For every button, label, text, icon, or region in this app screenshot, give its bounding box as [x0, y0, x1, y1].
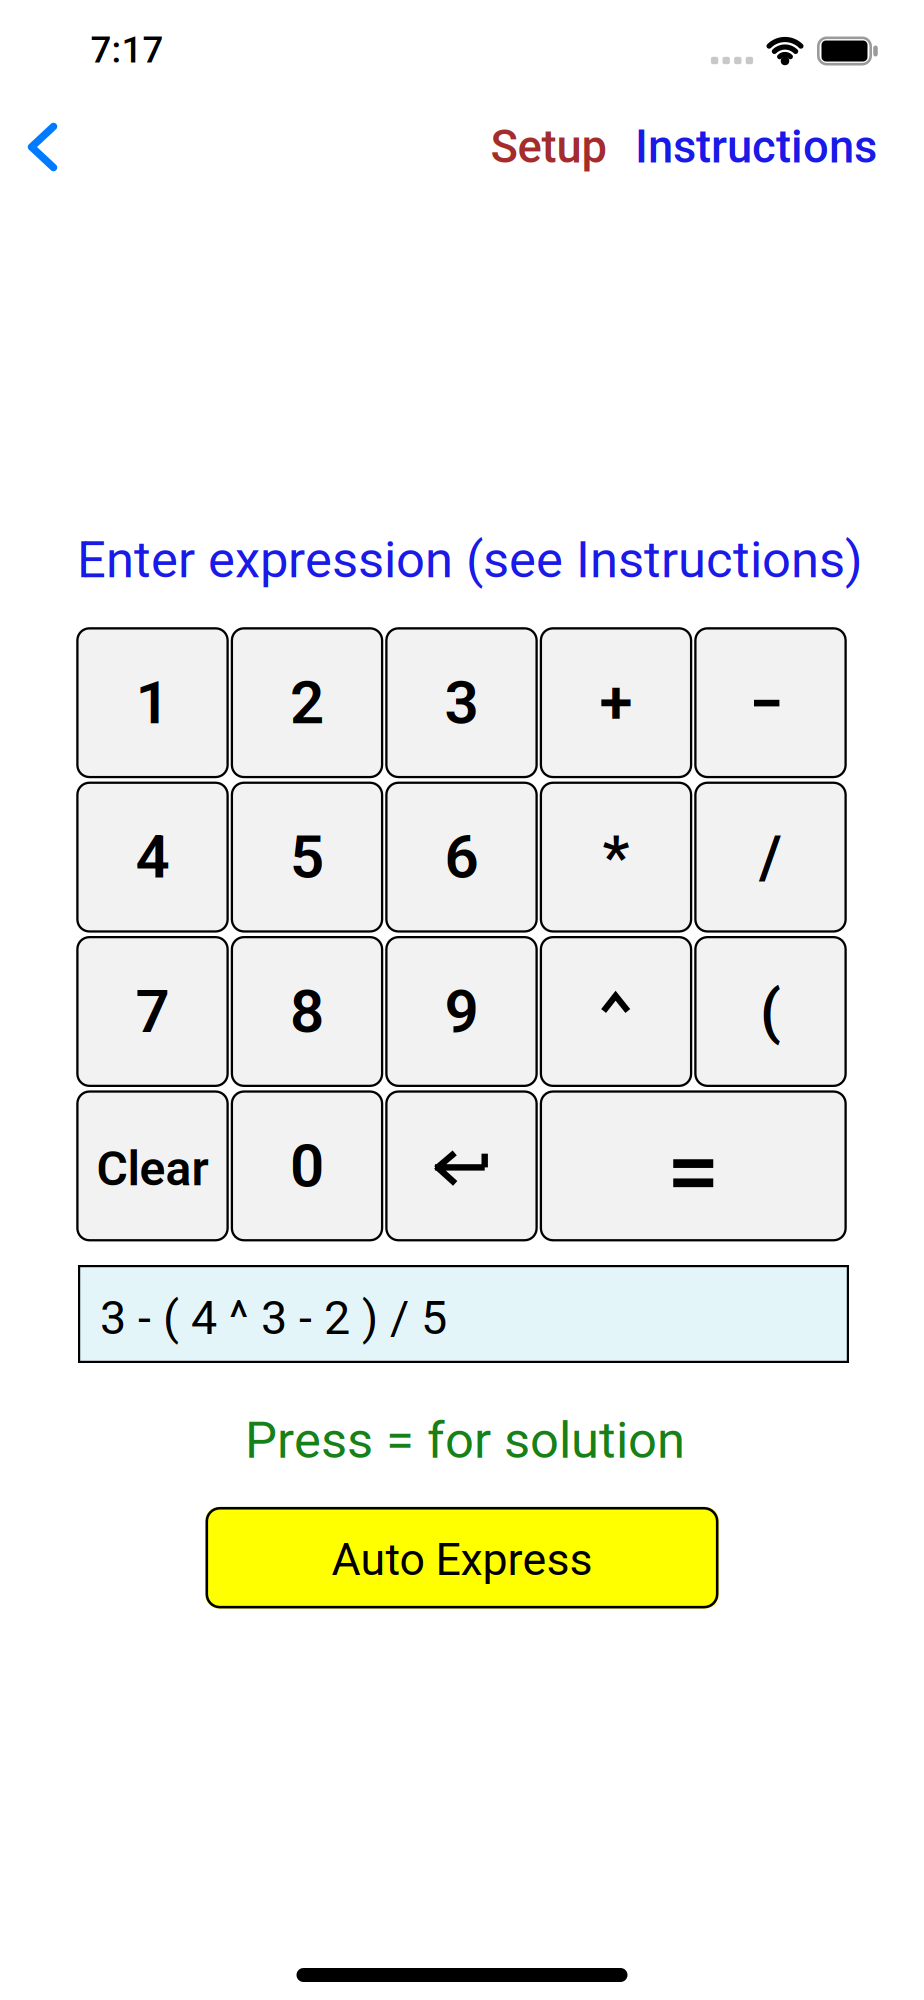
button[interactable]: 2	[231, 627, 383, 778]
button[interactable]: Setup	[490, 120, 606, 173]
staticText: (	[760, 976, 781, 1047]
staticText: 2	[290, 667, 324, 738]
staticText: +	[599, 667, 632, 738]
button[interactable]: 0	[231, 1090, 383, 1241]
staticText: Press = for solution	[245, 1411, 685, 1470]
button[interactable]: 6	[385, 782, 538, 933]
staticText: 7:17	[90, 28, 163, 71]
button[interactable]: 5	[231, 782, 383, 933]
staticText: Instructions	[635, 120, 877, 173]
button[interactable]: Auto Express	[205, 1507, 718, 1608]
staticText: 4	[135, 822, 169, 892]
button[interactable]: 3	[385, 627, 538, 778]
staticText: 7	[135, 976, 169, 1047]
staticText: 6	[444, 822, 478, 892]
staticText: 3 - ( 4 ^ 3 - 2 ) / 5	[100, 1291, 447, 1345]
button[interactable]: 9	[385, 936, 538, 1087]
button[interactable]	[385, 1090, 538, 1241]
staticText: Enter expression (see Instructions)	[77, 530, 863, 590]
staticText: 8	[290, 976, 324, 1047]
button[interactable]: Clear	[76, 1090, 229, 1241]
button[interactable]: (	[694, 936, 847, 1087]
button[interactable]: 7	[76, 936, 229, 1087]
button[interactable]	[540, 1090, 847, 1241]
button[interactable]: 1	[76, 627, 229, 778]
button[interactable]	[540, 936, 692, 1087]
button[interactable]: *	[540, 782, 692, 933]
staticText: 1	[135, 667, 169, 738]
staticText: 3	[444, 667, 478, 738]
staticText: 5	[290, 822, 324, 892]
staticText: Auto Express	[331, 1533, 592, 1586]
staticText: 0	[290, 1131, 324, 1201]
button[interactable]: +	[540, 627, 692, 778]
button[interactable]	[694, 627, 847, 778]
staticText: /	[759, 822, 782, 892]
staticText: 9	[444, 976, 478, 1047]
button[interactable]: /	[694, 782, 847, 933]
button[interactable]: Instructions	[635, 120, 877, 173]
staticText: Clear	[96, 1141, 208, 1197]
button[interactable]: 8	[231, 936, 383, 1087]
button[interactable]: 4	[76, 782, 229, 933]
staticText: Setup	[490, 120, 606, 173]
staticText: *	[602, 822, 629, 892]
button[interactable]	[19, 114, 65, 179]
